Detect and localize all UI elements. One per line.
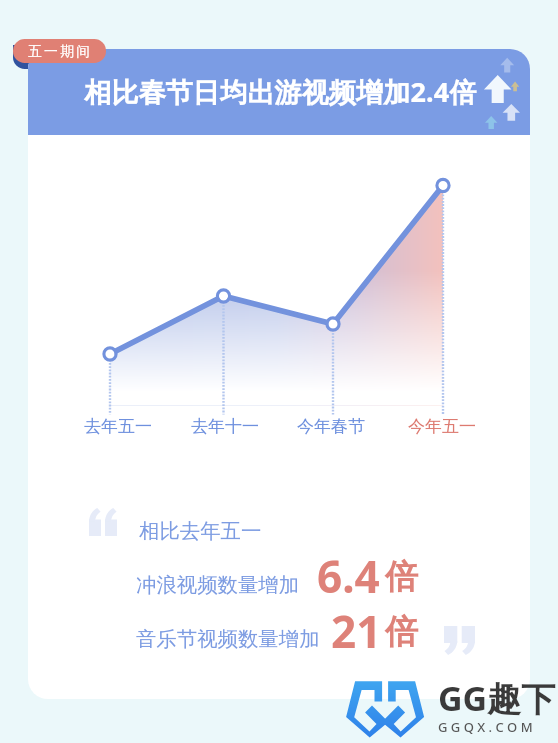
other: Growth arrows bbox=[466, 51, 530, 135]
staticText: GG趣下 bbox=[438, 675, 556, 719]
staticText: 21 bbox=[331, 601, 382, 661]
staticText: 五一期间 bbox=[28, 43, 93, 60]
staticText: 倍 bbox=[385, 556, 418, 598]
button[interactable]: 五一期间 bbox=[13, 39, 106, 63]
staticText: 相比春节日均出游视频增加2.4倍 bbox=[84, 73, 477, 110]
staticText: G G Q X . C O M bbox=[438, 718, 533, 736]
staticText: 相比去年五一 bbox=[139, 518, 262, 544]
staticText: 今年五一 bbox=[408, 416, 476, 437]
staticText: 去年五一 bbox=[84, 416, 152, 437]
staticText: 倍 bbox=[385, 611, 418, 653]
staticText: 音乐节视频数量增加 bbox=[136, 626, 320, 652]
staticText: 6.4 bbox=[317, 546, 380, 606]
staticText: 今年春节 bbox=[297, 416, 365, 437]
staticText: 去年十一 bbox=[191, 416, 259, 437]
staticText: 冲浪视频数量增加 bbox=[136, 572, 300, 598]
other: GG logo bbox=[346, 681, 426, 739]
